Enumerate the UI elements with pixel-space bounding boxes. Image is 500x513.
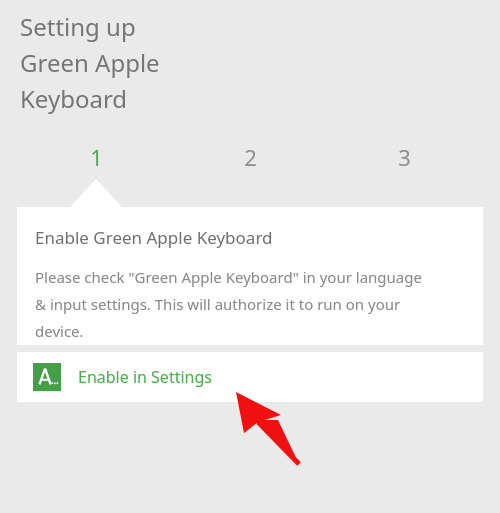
staticText: Green Apple xyxy=(20,46,160,79)
staticText: Please check "Green Apple Keyboard" in y… xyxy=(35,267,422,287)
staticText: Keyboard xyxy=(20,82,128,115)
other: Pointer arrow xyxy=(225,385,315,475)
staticText: & input settings. This will authorize it… xyxy=(35,294,401,314)
button[interactable]: Enable Green Apple Keyboard xyxy=(17,207,483,345)
staticText: Enable Green Apple Keyboard xyxy=(35,226,273,249)
staticText: 2 xyxy=(244,142,257,172)
button[interactable]: Enable in Settings xyxy=(17,352,483,402)
button[interactable]: 1 xyxy=(76,142,116,172)
button[interactable]: 2 xyxy=(230,142,270,172)
staticText: device. xyxy=(35,321,84,338)
button[interactable]: 3 xyxy=(384,142,424,172)
staticText: Enable in Settings xyxy=(78,366,212,388)
staticText: Setting up xyxy=(20,10,136,43)
staticText: 3 xyxy=(398,142,411,172)
staticText: 1 xyxy=(90,142,103,172)
